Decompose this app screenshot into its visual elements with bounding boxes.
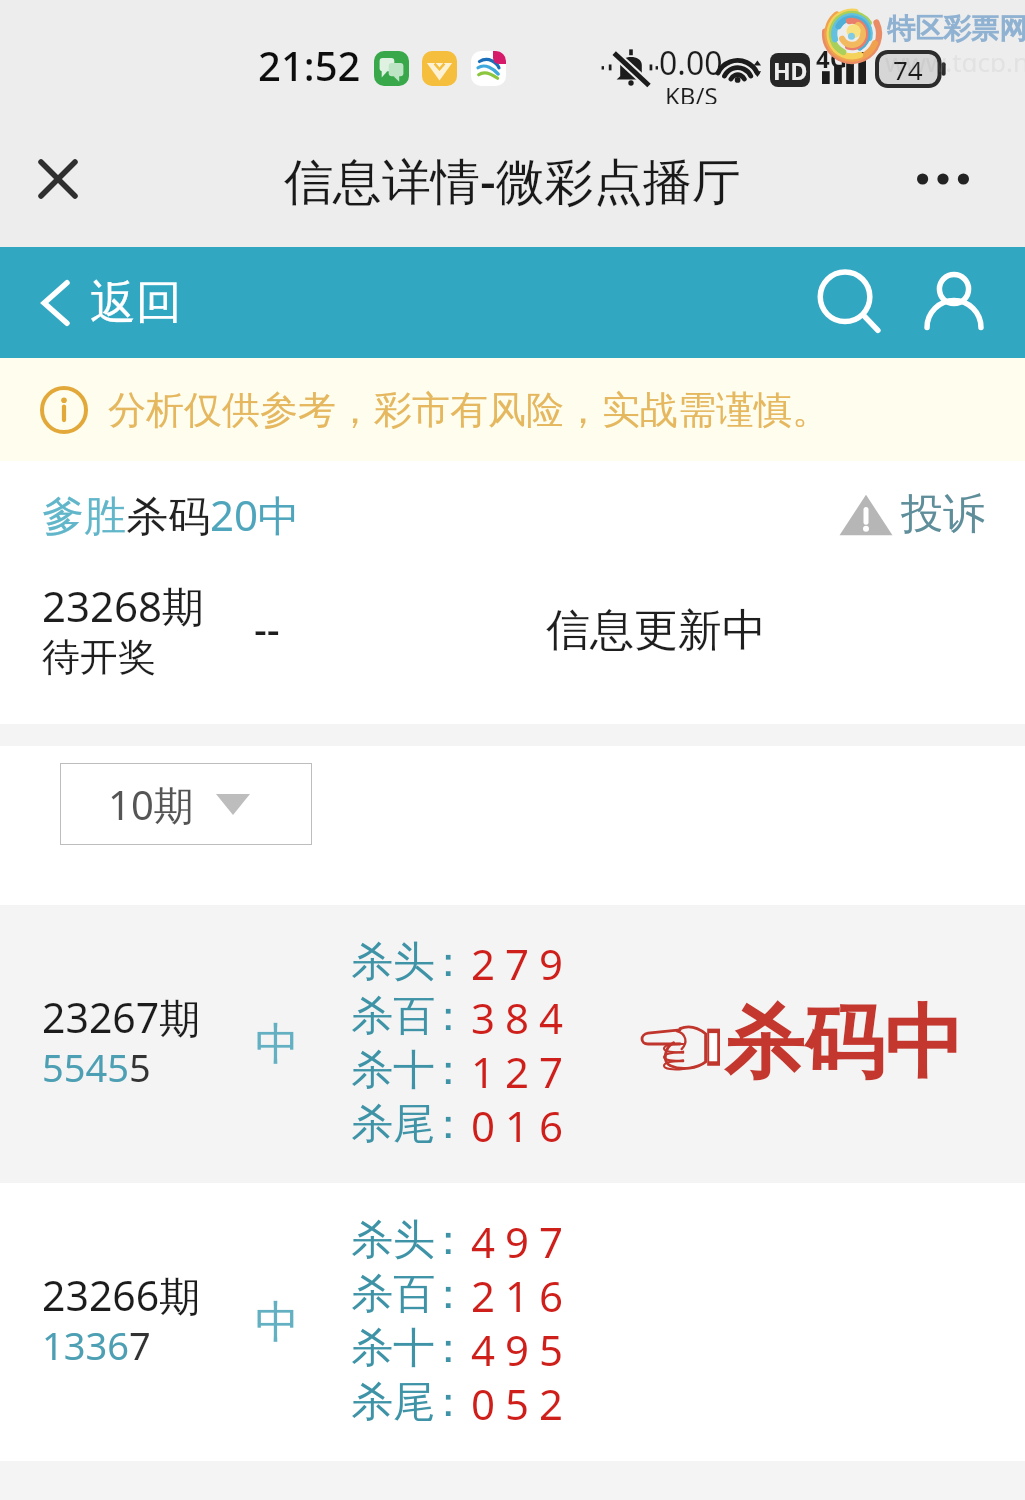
staticText: 052 <box>471 1375 574 1429</box>
staticText: 384 <box>471 989 574 1043</box>
staticText: 杀头 <box>351 936 435 989</box>
staticText: KB/S <box>665 79 718 104</box>
staticText: 中 <box>255 1295 299 1350</box>
staticText: 497 <box>471 1213 574 1267</box>
staticText: 13367 <box>42 1319 151 1371</box>
staticText: ： <box>427 1268 469 1321</box>
button[interactable]: 23266期 <box>0 1183 1025 1461</box>
button[interactable]: Search <box>806 259 894 347</box>
staticText: 127 <box>471 1043 574 1097</box>
staticText: ： <box>427 1376 469 1429</box>
staticText: 10期 <box>108 777 194 832</box>
staticText: -- <box>254 601 280 655</box>
staticText: ： <box>427 1044 469 1097</box>
staticText: 016 <box>471 1097 574 1151</box>
button[interactable]: 投诉 <box>839 488 985 541</box>
staticText: 爹胜杀码20中 <box>42 486 301 543</box>
staticText: 信息更新中 <box>546 603 766 658</box>
staticText: 返回 <box>90 274 182 332</box>
staticText: 23268期 <box>42 577 205 634</box>
button[interactable]: 10期 <box>60 763 312 845</box>
staticText: 495 <box>471 1321 574 1375</box>
staticText: 74 <box>893 52 923 87</box>
button[interactable]: Close <box>19 140 97 218</box>
staticText: 投诉 <box>901 488 985 541</box>
staticText: www.tqcp.net <box>885 44 1025 72</box>
staticText: 特区彩票网 <box>887 11 1025 46</box>
staticText: 4G <box>816 42 848 75</box>
staticText: 杀尾 <box>351 1098 435 1151</box>
staticText: 杀十 <box>351 1044 435 1097</box>
button[interactable]: 23267期 <box>0 905 1025 1183</box>
staticText: ： <box>427 936 469 989</box>
staticText: 216 <box>471 1267 574 1321</box>
staticText: 信息详情-微彩点播厅 <box>284 147 741 214</box>
button[interactable]: More options <box>903 139 983 219</box>
staticText: 待开奖 <box>42 633 156 681</box>
staticText: 0.00 <box>659 41 723 85</box>
staticText: 杀十 <box>351 1322 435 1375</box>
staticText: 分析仅供参考，彩市有风险，实战需谨慎。 <box>108 386 830 434</box>
staticText: HD <box>773 55 808 86</box>
staticText: 23266期 <box>42 1267 201 1323</box>
staticText: 23267期 <box>42 989 201 1045</box>
staticText: 杀尾 <box>351 1376 435 1429</box>
staticText: ： <box>427 1322 469 1375</box>
button[interactable]: 返回 <box>40 274 182 332</box>
staticText: 杀头 <box>351 1214 435 1267</box>
staticText: ： <box>427 1098 469 1151</box>
staticText: 杀码中 <box>724 993 964 1094</box>
staticText: 中 <box>255 1017 299 1072</box>
staticText: 55455 <box>42 1041 151 1093</box>
button[interactable]: Account <box>910 259 998 347</box>
staticText: 杀百 <box>351 990 435 1043</box>
staticText: ： <box>427 990 469 1043</box>
staticText: ： <box>427 1214 469 1267</box>
staticText: 杀百 <box>351 1268 435 1321</box>
staticText: 21:52 <box>258 38 361 92</box>
staticText: 279 <box>471 935 574 989</box>
